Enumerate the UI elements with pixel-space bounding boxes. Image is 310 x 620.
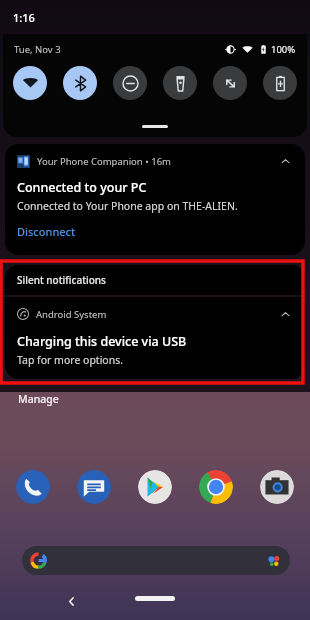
button[interactable]: Android System [5, 297, 305, 379]
staticText: 100% [271, 43, 296, 56]
button[interactable]: Auto rotate [213, 66, 247, 100]
button[interactable]: Home [135, 596, 175, 601]
button[interactable]: Chrome [199, 470, 233, 504]
button[interactable]: Phone [16, 470, 50, 504]
staticText: Silent notifications [17, 273, 106, 287]
button[interactable]: Disconnect [17, 224, 76, 239]
button[interactable]: Flashlight [163, 66, 197, 100]
staticText: Connected to your PC [17, 179, 147, 196]
button[interactable]: Silent notifications [5, 265, 305, 295]
button[interactable]: Collapse [277, 153, 293, 169]
button[interactable]: Your Phone Companion • 16m [5, 144, 305, 255]
button[interactable]: Play Store [138, 470, 172, 504]
staticText: 1:16 [13, 10, 35, 25]
staticText: Connected to Your Phone app on THE-ALIEN… [17, 199, 238, 213]
staticText: Tue, Nov 3 [14, 43, 61, 56]
staticText: Your Phone Companion • 16m [37, 155, 171, 168]
button[interactable]: Do Not Disturb [113, 66, 147, 100]
button[interactable]: Manage [18, 392, 59, 406]
button[interactable]: Collapse [277, 306, 293, 322]
staticText: Android System [36, 308, 107, 321]
staticText: Charging this device via USB [17, 333, 187, 350]
button[interactable] [22, 546, 290, 575]
staticText: Manage [18, 392, 59, 406]
button[interactable]: Wi-Fi [13, 66, 47, 100]
button[interactable]: Camera [260, 470, 294, 504]
button[interactable]: Messages [77, 470, 111, 504]
button[interactable]: Battery Saver [263, 66, 297, 100]
staticText: Disconnect [17, 224, 76, 239]
button[interactable]: Back [62, 592, 80, 610]
staticText: Tap for more options. [17, 353, 124, 367]
button[interactable]: Bluetooth [63, 66, 97, 100]
